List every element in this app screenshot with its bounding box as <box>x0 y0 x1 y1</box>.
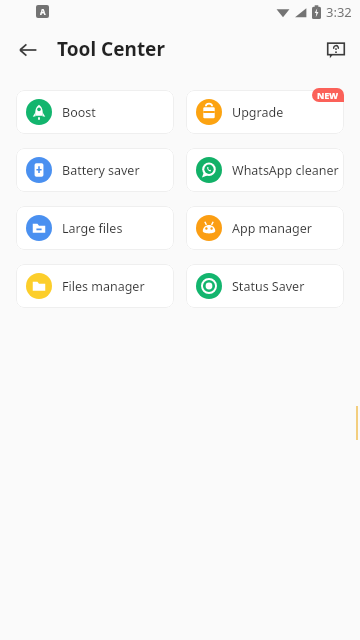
staticText: NEW <box>317 89 339 101</box>
staticText: Status Saver <box>232 278 305 295</box>
button[interactable]: Large files <box>16 206 174 250</box>
staticText: WhatsApp cleaner <box>232 162 339 179</box>
button[interactable]: Back <box>14 36 42 64</box>
staticText: A <box>40 6 46 17</box>
staticText: Tool Center <box>57 36 165 62</box>
staticText: App manager <box>232 220 312 237</box>
staticText: Boost <box>62 104 96 121</box>
button[interactable]: Boost <box>16 90 174 134</box>
button[interactable]: Battery saver <box>16 148 174 192</box>
staticText: Upgrade <box>232 104 284 121</box>
button[interactable]: Upgrade <box>186 90 344 134</box>
staticText: Files manager <box>62 278 145 295</box>
button[interactable]: Help <box>322 36 350 64</box>
button[interactable]: WhatsApp cleaner <box>186 148 344 192</box>
staticText: Battery saver <box>62 162 140 179</box>
button[interactable]: App manager <box>186 206 344 250</box>
staticText: Large files <box>62 220 123 237</box>
button[interactable]: Status Saver <box>186 264 344 308</box>
staticText: 3:32 <box>326 3 352 21</box>
button[interactable]: Files manager <box>16 264 174 308</box>
